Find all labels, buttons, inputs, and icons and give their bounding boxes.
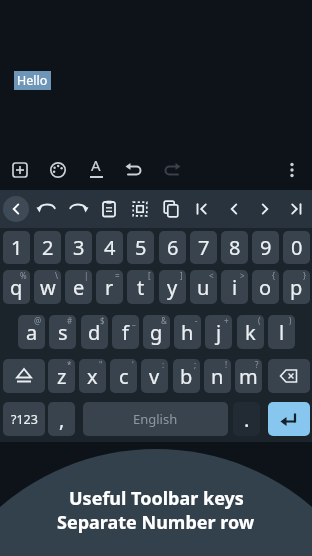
button[interactable]: ?123: [3, 402, 45, 436]
staticText: -: [195, 315, 198, 326]
button[interactable]: d: [81, 315, 108, 349]
staticText: 1: [11, 234, 23, 261]
button[interactable]: 4: [96, 231, 123, 264]
button[interactable]: [6, 156, 34, 184]
button[interactable]: m: [235, 359, 262, 393]
staticText: Separate Number row: [57, 510, 255, 535]
button[interactable]: n: [204, 359, 231, 393]
button[interactable]: c: [110, 359, 137, 393]
button[interactable]: [278, 156, 306, 184]
button[interactable]: [268, 359, 310, 393]
button[interactable]: 6: [159, 231, 186, 264]
button[interactable]: v: [141, 359, 168, 393]
button[interactable]: [251, 195, 279, 223]
staticText: #: [67, 315, 73, 326]
staticText: ?123: [11, 411, 38, 428]
button[interactable]: e: [65, 270, 92, 304]
button[interactable]: [95, 195, 123, 223]
button[interactable]: [158, 156, 186, 184]
button[interactable]: [44, 156, 72, 184]
staticText: 9: [260, 234, 272, 261]
button[interactable]: [3, 359, 45, 393]
staticText: y: [167, 274, 178, 301]
staticText: w: [40, 274, 56, 301]
staticText: r: [105, 274, 114, 301]
button[interactable]: o: [252, 270, 279, 304]
button[interactable]: [188, 195, 216, 223]
staticText: {: [272, 270, 276, 281]
staticText: g: [150, 319, 163, 346]
button[interactable]: a: [18, 315, 45, 349]
staticText: 8: [229, 234, 241, 261]
button[interactable]: r: [96, 270, 123, 304]
button[interactable]: [3, 196, 29, 222]
button[interactable]: y: [159, 270, 186, 304]
staticText: 6: [167, 234, 179, 261]
button[interactable]: [282, 195, 310, 223]
staticText: ,: [59, 406, 65, 433]
staticText: !: [225, 359, 228, 370]
staticText: *: [67, 359, 72, 370]
button[interactable]: h: [174, 315, 201, 349]
button[interactable]: z: [48, 359, 75, 393]
button[interactable]: 7: [190, 231, 217, 264]
staticText: d: [88, 319, 101, 346]
staticText: }: [303, 270, 307, 281]
button[interactable]: b: [173, 359, 200, 393]
staticText: Hello: [17, 72, 48, 89]
staticText: x: [87, 363, 98, 390]
button[interactable]: w: [34, 270, 61, 304]
button[interactable]: k: [237, 315, 264, 349]
button[interactable]: [33, 195, 61, 223]
button[interactable]: 9: [252, 231, 279, 264]
staticText: t: [137, 274, 145, 301]
staticText: ': [132, 359, 134, 370]
staticText: English: [133, 410, 178, 428]
button[interactable]: 8: [221, 231, 248, 264]
button[interactable]: x: [79, 359, 106, 393]
staticText: >: [240, 270, 245, 281]
staticText: k: [245, 319, 256, 346]
button[interactable]: ,: [48, 402, 75, 436]
button[interactable]: f: [112, 315, 139, 349]
staticText: @: [34, 315, 42, 326]
staticText: q: [10, 274, 23, 301]
staticText: s: [58, 319, 68, 346]
button[interactable]: s: [49, 315, 76, 349]
staticText: b: [180, 363, 193, 390]
button[interactable]: 0: [283, 231, 310, 264]
button[interactable]: 3: [65, 231, 92, 264]
staticText: &: [161, 315, 167, 326]
button[interactable]: 2: [34, 231, 61, 264]
button[interactable]: 1: [3, 231, 30, 264]
button[interactable]: [126, 195, 154, 223]
button[interactable]: .: [233, 402, 260, 436]
button[interactable]: g: [143, 315, 170, 349]
button[interactable]: [220, 195, 248, 223]
button[interactable]: [120, 156, 148, 184]
staticText: |: [84, 270, 89, 281]
button[interactable]: p: [283, 270, 310, 304]
staticText: i: [232, 274, 238, 301]
button[interactable]: q: [3, 270, 30, 304]
staticText: .: [244, 406, 250, 433]
button[interactable]: [157, 195, 185, 223]
staticText: ;: [194, 359, 197, 370]
button[interactable]: Hello: [14, 71, 51, 90]
button[interactable]: j: [205, 315, 232, 349]
staticText: n: [211, 363, 224, 390]
staticText: l: [279, 319, 285, 346]
button[interactable]: A: [87, 155, 105, 183]
staticText: $: [100, 315, 105, 326]
staticText: Useful Toolbar keys: [69, 486, 244, 511]
button[interactable]: English: [83, 402, 228, 436]
button[interactable]: t: [127, 270, 154, 304]
staticText: v: [149, 363, 160, 390]
button[interactable]: i: [221, 270, 248, 304]
button[interactable]: [64, 195, 92, 223]
staticText: ): [289, 315, 292, 326]
button[interactable]: 5: [127, 231, 154, 264]
button[interactable]: l: [268, 315, 295, 349]
button[interactable]: [268, 402, 310, 436]
button[interactable]: u: [190, 270, 217, 304]
